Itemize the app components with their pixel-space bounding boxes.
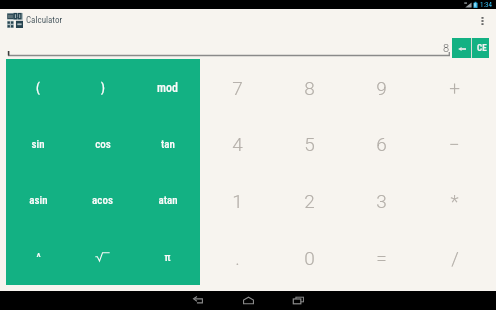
staticText: mod — [157, 81, 178, 95]
button[interactable]: 0 — [273, 228, 345, 285]
button[interactable]: More options — [472, 9, 492, 32]
staticText: 4 — [232, 133, 243, 155]
staticText: 8 — [304, 77, 315, 99]
staticText: 8 — [443, 42, 450, 55]
button[interactable]: 4 — [201, 115, 273, 171]
staticText: 5 — [304, 133, 315, 155]
staticText: * — [450, 190, 459, 212]
staticText: ( — [36, 81, 40, 95]
staticText: sin — [31, 138, 45, 151]
button[interactable]: Home — [236, 291, 260, 310]
staticText: 2 — [304, 190, 315, 212]
button[interactable]: 2 — [273, 171, 345, 228]
button[interactable]: sin — [6, 115, 70, 171]
button[interactable]: / — [418, 228, 491, 285]
staticText: 6 — [376, 133, 387, 155]
staticText: π — [164, 251, 171, 264]
button[interactable]: ^ — [6, 228, 70, 285]
staticText: cos — [95, 138, 111, 151]
button[interactable] — [70, 228, 135, 285]
button[interactable]: = — [345, 228, 418, 285]
staticText: 9 — [376, 77, 387, 99]
staticText: + — [449, 77, 460, 99]
staticText: / — [451, 247, 459, 269]
staticText: atan — [158, 194, 178, 207]
button[interactable]: 6 — [345, 115, 418, 171]
button[interactable]: 7 — [201, 59, 273, 115]
button[interactable]: cos — [70, 115, 135, 171]
button[interactable]: 1 — [201, 171, 273, 228]
staticText: asin — [29, 194, 48, 207]
button[interactable]: 9 — [345, 59, 418, 115]
button[interactable]: Recent apps — [286, 291, 310, 310]
staticText: 1 — [232, 190, 243, 212]
button[interactable]: 8 — [273, 59, 345, 115]
staticText: 3 — [376, 190, 387, 212]
staticText: acos — [92, 194, 113, 207]
button[interactable]: asin — [6, 171, 70, 228]
button[interactable]: tan — [135, 115, 200, 171]
button[interactable]: + — [418, 59, 491, 115]
button[interactable]: Back — [186, 291, 210, 310]
staticText: . — [235, 247, 240, 269]
button[interactable]: ( — [6, 59, 70, 115]
staticText: ^ — [36, 251, 41, 264]
button[interactable]: atan — [135, 171, 200, 228]
staticText: = — [376, 247, 387, 269]
staticText: 1:34 — [480, 1, 493, 9]
button[interactable]: 5 — [273, 115, 345, 171]
staticText: Calculator — [26, 15, 63, 26]
button[interactable]: π — [135, 228, 200, 285]
staticText: − — [449, 133, 460, 155]
button[interactable]: ) — [70, 59, 135, 115]
staticText: 0 — [304, 247, 315, 269]
staticText: CE — [477, 43, 487, 54]
button[interactable]: CE — [472, 38, 489, 58]
staticText: ) — [101, 81, 105, 95]
staticText: 7 — [232, 77, 243, 99]
button[interactable]: mod — [135, 59, 200, 115]
button[interactable]: 3 — [345, 171, 418, 228]
button[interactable]: * — [418, 171, 491, 228]
button[interactable]: Backspace — [452, 38, 471, 58]
button[interactable]: acos — [70, 171, 135, 228]
staticText: tan — [161, 138, 175, 151]
